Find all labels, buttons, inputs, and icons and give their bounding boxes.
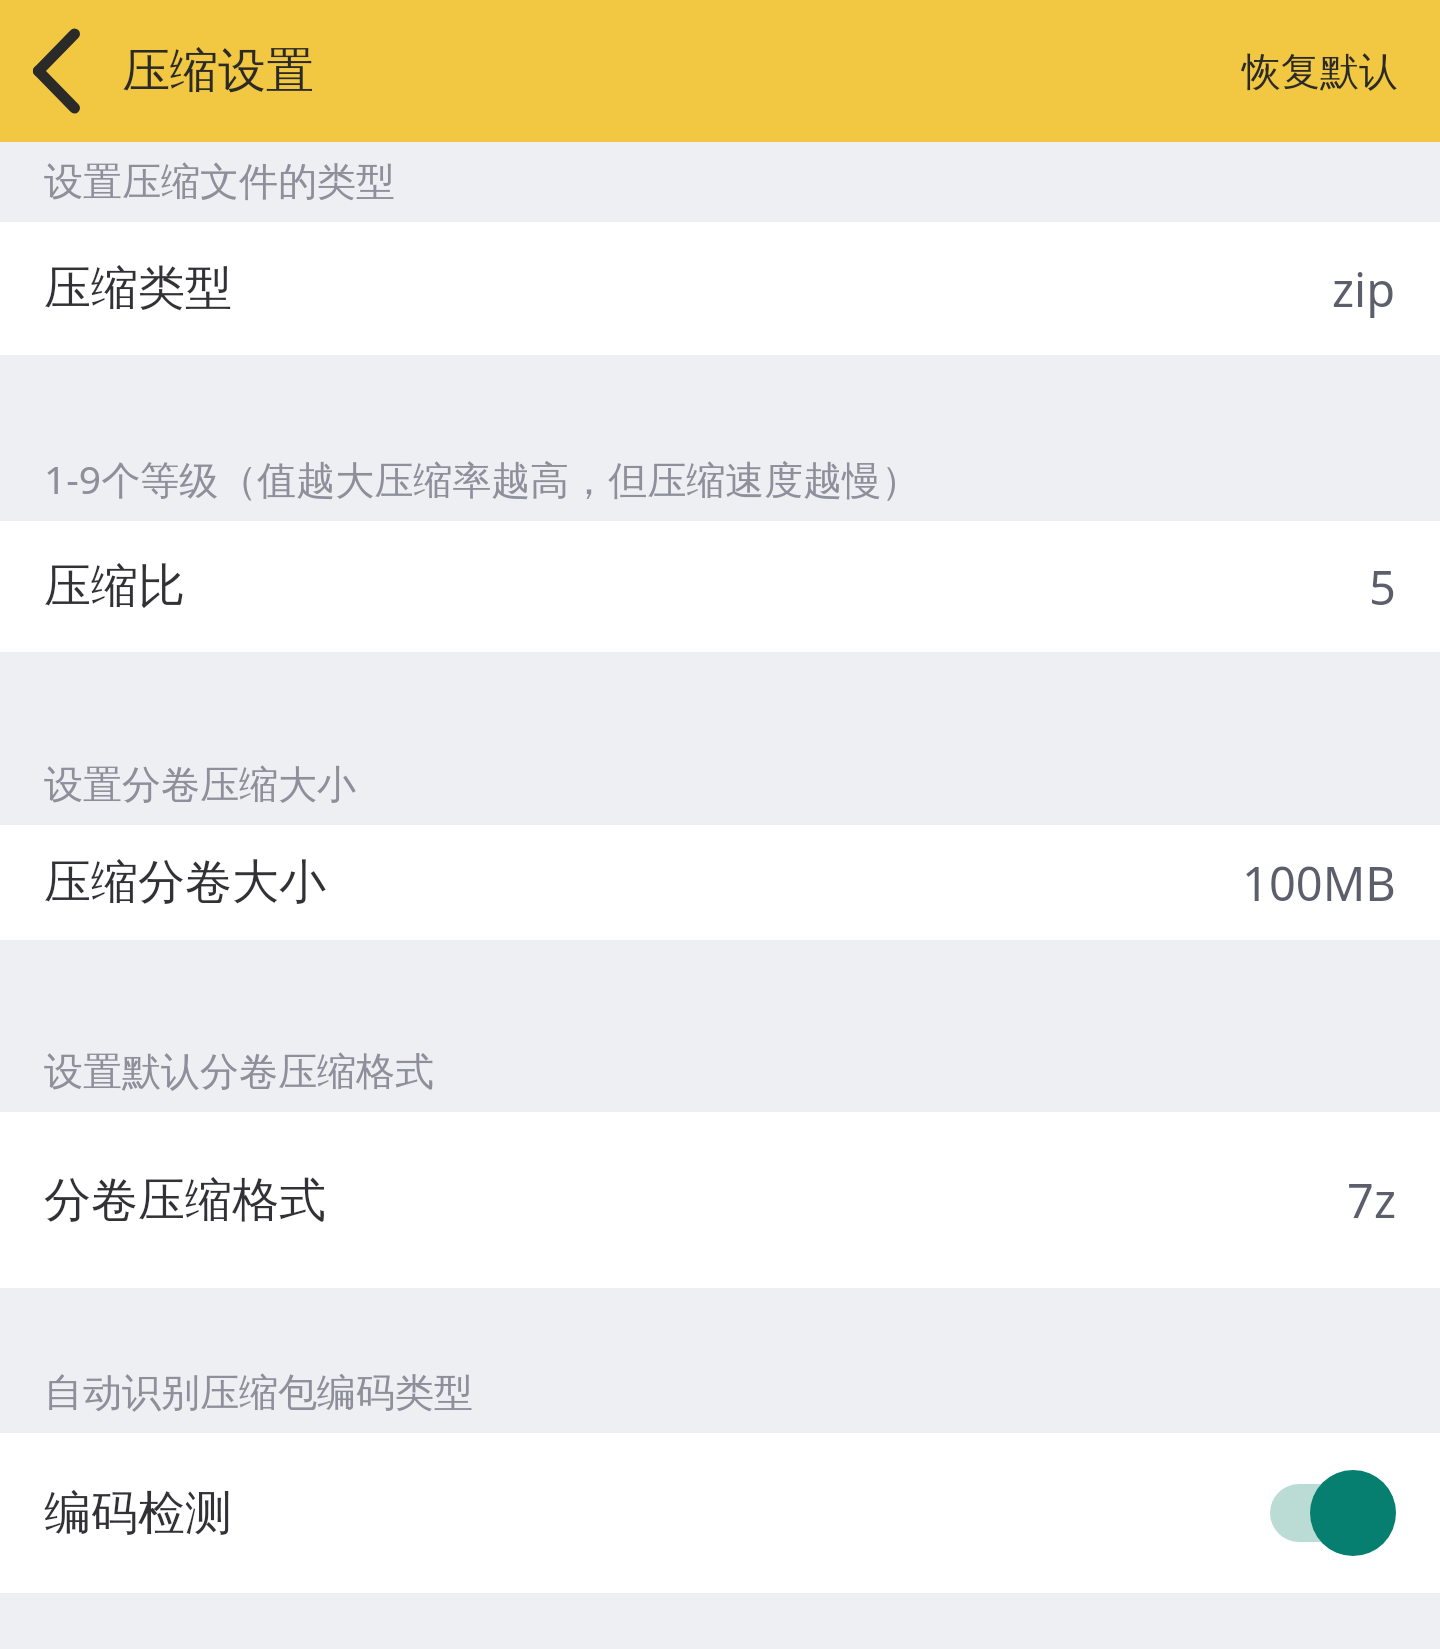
- staticText: 设置压缩文件的类型: [44, 157, 395, 206]
- button[interactable]: Back: [0, 0, 112, 142]
- staticText: 编码检测: [44, 1484, 232, 1543]
- button[interactable]: 恢复默认: [1200, 0, 1440, 142]
- staticText: 100MB: [1242, 851, 1396, 915]
- staticText: 压缩分卷大小: [44, 853, 326, 912]
- button[interactable]: 编码检测: [0, 1433, 1440, 1593]
- button[interactable]: 压缩类型: [0, 222, 1440, 355]
- staticText: 压缩类型: [44, 259, 232, 318]
- staticText: 5: [1369, 555, 1396, 619]
- staticText: 设置分卷压缩大小: [44, 760, 356, 809]
- staticText: 压缩比: [44, 557, 185, 616]
- button[interactable]: 压缩分卷大小: [0, 825, 1440, 940]
- button[interactable]: 分卷压缩格式: [0, 1112, 1440, 1288]
- staticText: 1-9个等级（值越大压缩率越高，但压缩速度越慢）: [44, 452, 921, 505]
- staticText: 自动识别压缩包编码类型: [44, 1368, 473, 1417]
- staticText: 恢复默认: [1242, 47, 1398, 96]
- staticText: 7z: [1347, 1168, 1396, 1232]
- staticText: 压缩设置: [122, 41, 314, 101]
- staticText: zip: [1332, 257, 1396, 321]
- button[interactable]: 压缩比: [0, 521, 1440, 652]
- staticText: 设置默认分卷压缩格式: [44, 1047, 434, 1096]
- staticText: 分卷压缩格式: [44, 1171, 326, 1230]
- button[interactable]: Encoding detection toggle: [1270, 1470, 1396, 1556]
